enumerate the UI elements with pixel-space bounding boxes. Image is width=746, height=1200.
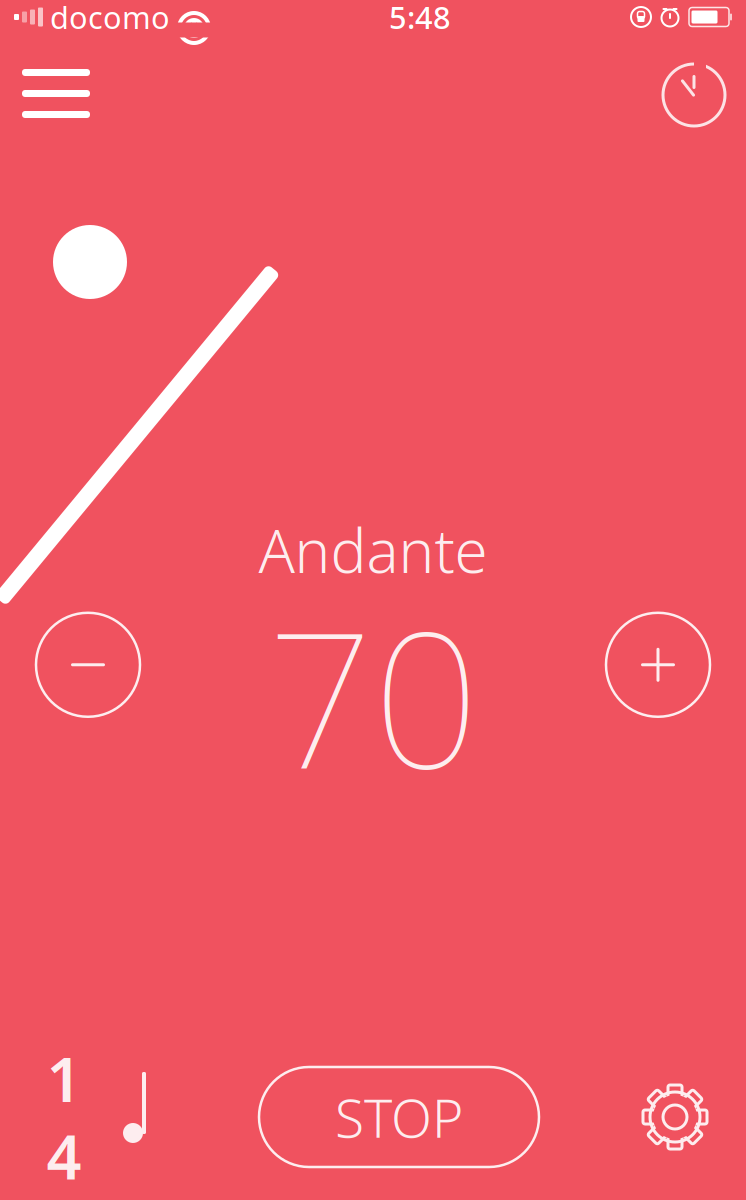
- button[interactable]: Menu: [0, 47, 112, 140]
- staticText: 1: [46, 1038, 81, 1119]
- button[interactable]: Increase tempo: [600, 607, 716, 723]
- button[interactable]: Note value, quarter note: [100, 1062, 166, 1172]
- staticText: 70: [267, 572, 479, 820]
- staticText: docomo: [50, 0, 170, 37]
- button[interactable]: Settings: [632, 1062, 718, 1172]
- button[interactable]: Decrease tempo: [30, 607, 146, 723]
- staticText: STOP: [335, 1082, 463, 1152]
- staticText: 4: [46, 1115, 81, 1196]
- staticText: Andante: [258, 510, 487, 590]
- button[interactable]: STOP: [259, 1067, 539, 1167]
- button[interactable]: Time signature 1/4: [28, 1062, 100, 1172]
- button[interactable]: Timer: [642, 47, 746, 143]
- staticText: 5:48: [389, 0, 451, 37]
